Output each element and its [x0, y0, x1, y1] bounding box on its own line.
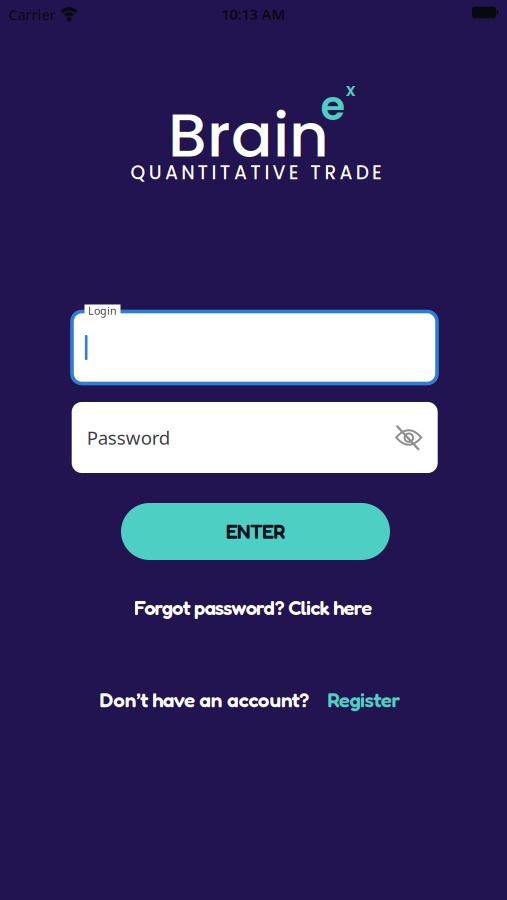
staticText: T: [250, 159, 261, 186]
staticText: U: [149, 159, 162, 186]
staticText: 10:13 AM: [221, 4, 285, 24]
staticText: T: [310, 159, 321, 186]
button[interactable]: Password: [72, 402, 438, 473]
staticText: I: [212, 159, 217, 186]
staticText: T: [197, 159, 208, 186]
staticText: D: [356, 159, 369, 186]
staticText: ENTER: [226, 519, 285, 543]
button[interactable]: Register: [327, 687, 400, 712]
staticText: Register: [327, 687, 400, 712]
staticText: A: [234, 159, 247, 186]
staticText: x: [346, 78, 355, 102]
staticText: Don’t have an account?: [100, 687, 309, 712]
staticText: Password: [87, 425, 170, 450]
staticText: I: [264, 159, 269, 186]
staticText: A: [340, 159, 353, 186]
staticText: Forgot password? Click here: [134, 595, 372, 620]
button[interactable]: Login: [71, 310, 438, 384]
staticText: Login: [88, 303, 117, 318]
staticText: Carrier: [8, 5, 55, 24]
staticText: V: [273, 159, 286, 186]
button[interactable]: Forgot password? Click here: [134, 595, 372, 620]
staticText: A: [165, 159, 178, 186]
staticText: N: [181, 159, 194, 186]
button[interactable]: ENTER: [121, 503, 390, 560]
staticText: E: [289, 159, 299, 186]
staticText: E: [372, 159, 382, 186]
staticText: Q: [131, 159, 146, 186]
staticText: Brain: [168, 92, 329, 178]
staticText: R: [324, 159, 336, 186]
staticText: T: [220, 159, 231, 186]
staticText: e: [320, 78, 345, 134]
